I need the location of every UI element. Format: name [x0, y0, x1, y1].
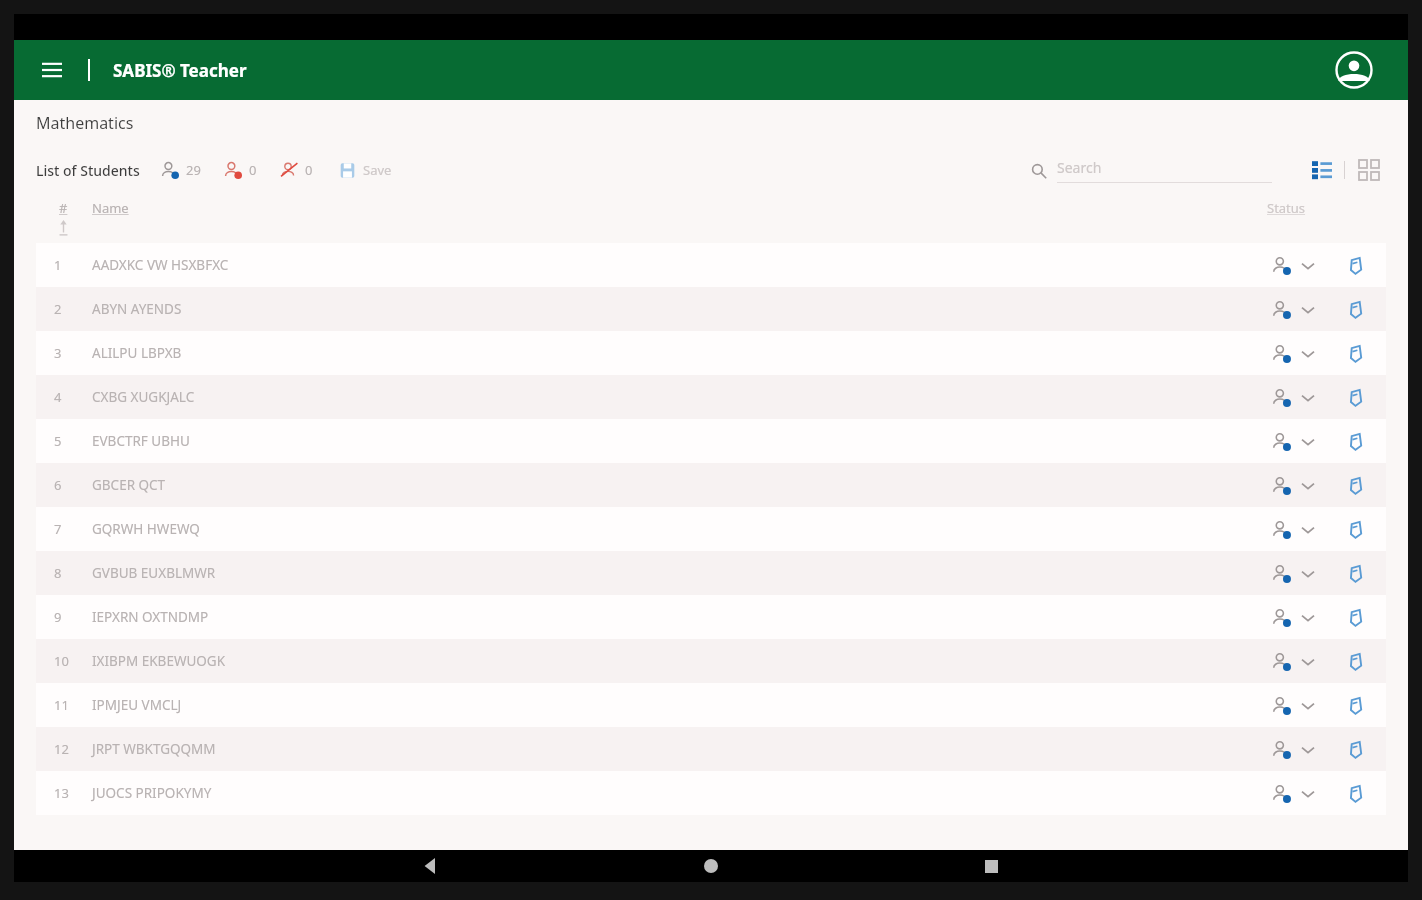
- button[interactable]: Edit note: [1342, 516, 1368, 542]
- button[interactable]: Attendance status: [1271, 783, 1314, 804]
- button[interactable]: Attendance status: [1271, 387, 1314, 408]
- button[interactable]: Back: [291, 850, 571, 882]
- button[interactable]: Edit note: [1342, 340, 1368, 366]
- staticText: SABIS® Teacher: [113, 59, 247, 82]
- button[interactable]: List view: [1308, 156, 1336, 184]
- staticText: 7: [54, 520, 62, 538]
- staticText: Save: [363, 161, 392, 179]
- staticText: List of Students: [36, 161, 140, 180]
- button[interactable]: Edit note: [1342, 648, 1368, 674]
- button[interactable]: 7: [36, 507, 1386, 551]
- staticText: 6: [54, 476, 62, 494]
- button[interactable]: 11: [36, 683, 1386, 727]
- button[interactable]: Edit note: [1342, 384, 1368, 410]
- button[interactable]: 9: [36, 595, 1386, 639]
- staticText: 2: [54, 300, 62, 318]
- staticText: 9: [54, 608, 62, 626]
- button[interactable]: Present count: [160, 160, 201, 180]
- button[interactable]: Save: [339, 161, 392, 179]
- staticText: Mathematics: [36, 112, 134, 134]
- button[interactable]: 3: [36, 331, 1386, 375]
- staticText: 29: [186, 161, 201, 179]
- button[interactable]: Excused count: [279, 160, 313, 180]
- staticText: Name: [92, 199, 129, 217]
- button[interactable]: 12: [36, 727, 1386, 771]
- staticText: 0: [305, 161, 313, 179]
- staticText: 10: [54, 652, 69, 670]
- button[interactable]: Edit note: [1342, 560, 1368, 586]
- staticText: GBCER QCT: [92, 476, 166, 494]
- button[interactable]: Edit note: [1342, 252, 1368, 278]
- button[interactable]: Attendance status: [1271, 255, 1314, 276]
- button[interactable]: Attendance status: [1271, 651, 1314, 672]
- button[interactable]: Attendance status: [1271, 475, 1314, 496]
- staticText: ALILPU LBPXB: [92, 344, 182, 362]
- staticText: 1: [54, 256, 62, 274]
- button[interactable]: 4: [36, 375, 1386, 419]
- staticText: ABYN AYENDS: [92, 300, 182, 318]
- staticText: #: [59, 199, 68, 217]
- button[interactable]: Attendance status: [1271, 431, 1314, 452]
- button[interactable]: 10: [36, 639, 1386, 683]
- button[interactable]: Grid view: [1355, 156, 1383, 184]
- button[interactable]: 13: [36, 771, 1386, 815]
- button[interactable]: 1: [36, 243, 1386, 287]
- staticText: GQRWH HWEWQ: [92, 520, 200, 538]
- staticText: 3: [54, 344, 62, 362]
- button[interactable]: Edit note: [1342, 736, 1368, 762]
- button[interactable]: Edit note: [1342, 428, 1368, 454]
- button[interactable]: 8: [36, 551, 1386, 595]
- staticText: JUOCS PRIPOKYMY: [92, 784, 212, 802]
- button[interactable]: Attendance status: [1271, 343, 1314, 364]
- staticText: IXIBPM EKBEWUOGK: [92, 652, 226, 670]
- button[interactable]: Attendance status: [1271, 563, 1314, 584]
- staticText: 13: [54, 784, 69, 802]
- button[interactable]: Search: [1031, 158, 1272, 183]
- button[interactable]: Edit note: [1342, 780, 1368, 806]
- button[interactable]: Edit note: [1342, 692, 1368, 718]
- button[interactable]: Edit note: [1342, 296, 1368, 322]
- button[interactable]: Home: [571, 850, 851, 882]
- button[interactable]: Attendance status: [1271, 739, 1314, 760]
- button[interactable]: Recents: [851, 850, 1131, 882]
- button[interactable]: 6: [36, 463, 1386, 507]
- button[interactable]: Attendance status: [1271, 299, 1314, 320]
- button[interactable]: Absent count: [223, 160, 257, 180]
- button[interactable]: 2: [36, 287, 1386, 331]
- button[interactable]: Edit note: [1342, 472, 1368, 498]
- staticText: 0: [249, 161, 257, 179]
- staticText: 8: [54, 564, 62, 582]
- staticText: JRPT WBKTGQQMM: [92, 740, 216, 758]
- staticText: IPMJEU VMCLJ: [92, 696, 182, 714]
- staticText: EVBCTRF UBHU: [92, 432, 190, 450]
- staticText: 12: [54, 740, 69, 758]
- button[interactable]: Edit note: [1342, 604, 1368, 630]
- staticText: GVBUB EUXBLMWR: [92, 564, 216, 582]
- staticText: Status: [1267, 199, 1306, 217]
- button[interactable]: Attendance status: [1271, 519, 1314, 540]
- staticText: Search: [1057, 158, 1102, 177]
- staticText: AADXKC VW HSXBFXC: [92, 256, 229, 274]
- button[interactable]: Attendance status: [1271, 607, 1314, 628]
- button[interactable]: Attendance status: [1271, 695, 1314, 716]
- button[interactable]: Account: [1331, 47, 1377, 93]
- staticText: IEPXRN OXTNDMP: [92, 608, 209, 626]
- staticText: CXBG XUGKJALC: [92, 388, 195, 406]
- button[interactable]: Menu: [30, 48, 74, 92]
- staticText: 5: [54, 432, 62, 450]
- staticText: 11: [54, 696, 69, 714]
- button[interactable]: 5: [36, 419, 1386, 463]
- staticText: 4: [54, 388, 62, 406]
